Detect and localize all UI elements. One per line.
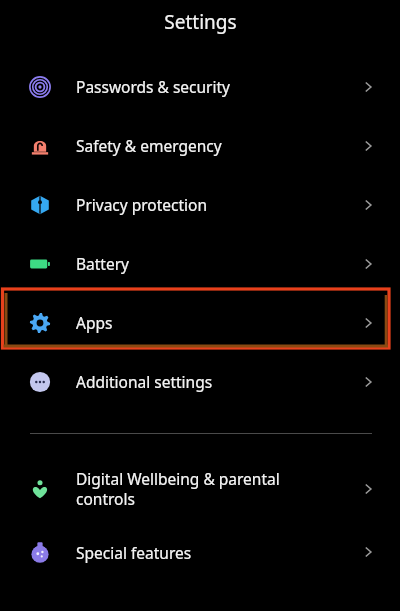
button[interactable]: Special features [0,522,400,582]
button[interactable]: Additional settings [0,352,400,411]
staticText: Battery [76,253,352,274]
staticText: Special features [76,542,352,563]
staticText: Privacy protection [76,194,352,215]
staticText: Settings [164,9,237,35]
staticText: Digital Wellbeing & parental controls [76,468,352,510]
button[interactable]: Safety & emergency [0,116,400,175]
other: Highlight around Apps [0,0,400,611]
button[interactable]: Digital Wellbeing & parental controls [0,456,400,522]
staticText: Passwords & security [76,76,352,97]
staticText: Apps [76,312,352,333]
staticText: Additional settings [76,371,352,392]
staticText: Safety & emergency [76,135,352,156]
button[interactable]: Apps [0,293,400,352]
button[interactable]: Passwords & security [0,57,400,116]
button[interactable]: Battery [0,234,400,293]
button[interactable]: Privacy protection [0,175,400,234]
